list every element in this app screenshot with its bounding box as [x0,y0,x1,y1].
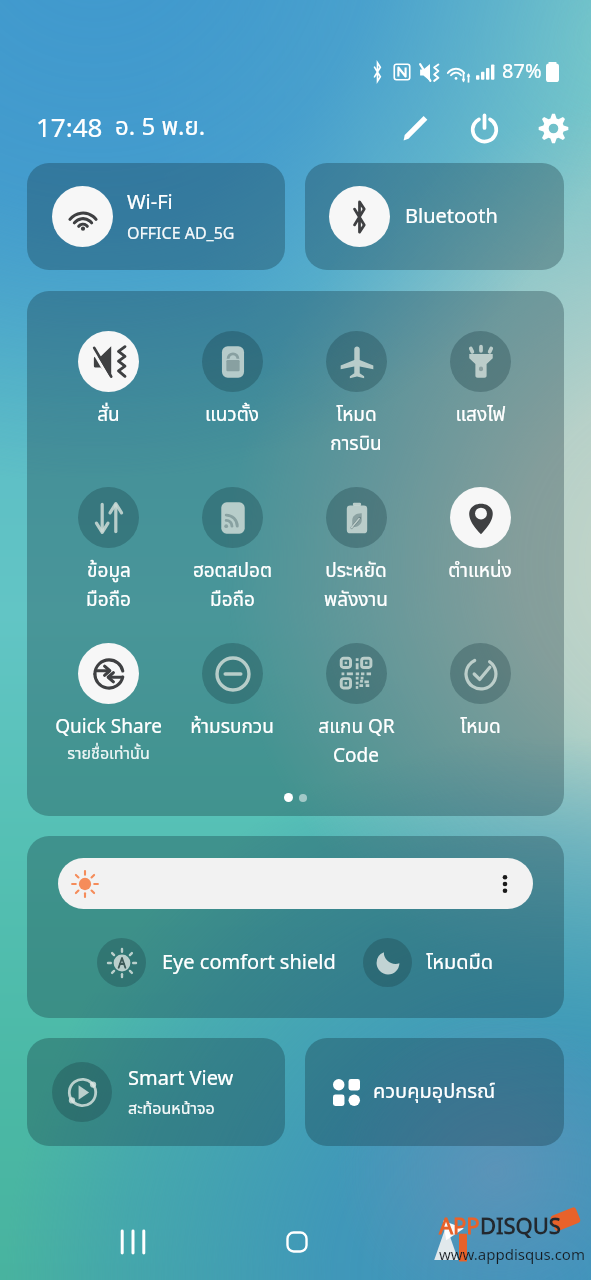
button[interactable]: Back [379,1211,543,1273]
button[interactable]: More options [58,858,533,909]
staticText: ประหยัด [325,557,387,586]
staticText: ตำแหน่ง [448,557,512,586]
button[interactable]: ห้ามรบกวน [170,643,294,799]
staticText: Eye comfort shield [162,948,336,978]
button[interactable]: Power [458,102,510,154]
staticText: การบิน [330,430,382,459]
staticText: ฮอตสปอต [193,557,272,586]
button[interactable]: Wi-Fi [27,163,285,270]
button[interactable]: โหมด [418,643,542,799]
staticText: สะท้อนหน้าจอ [128,1097,215,1121]
staticText: แสงไฟ [455,401,506,430]
staticText: 87% [502,57,542,87]
staticText: 17:48 [36,109,103,148]
button[interactable]: ตำแหน่ง [418,487,542,643]
staticText: ควบคุมอุปกรณ์ [373,1077,496,1107]
staticText: โหมด [460,713,501,742]
button[interactable]: Eye comfort shield [97,938,336,987]
button[interactable]: Settings [527,102,579,154]
staticText: ห้ามรบกวน [190,713,274,742]
staticText: ข้อมูล [87,557,131,586]
button[interactable]: แนวตั้ง [170,331,294,487]
button[interactable]: ข้อมูล [47,487,170,643]
staticText: OFFICE AD_5G [127,222,235,246]
button[interactable]: ควบคุมอุปกรณ์ [305,1038,564,1146]
button[interactable]: Quick Share [47,643,170,799]
staticText: สแกน QR [318,713,395,742]
staticText: www.appdisqus.com [439,1244,585,1267]
staticText: Quick Share [55,713,162,742]
button[interactable]: สั่น [47,331,170,487]
button[interactable]: Recents [51,1211,215,1273]
button[interactable]: Bluetooth [305,163,564,270]
button[interactable]: โหมด [294,331,418,487]
button[interactable]: แสงไฟ [418,331,542,487]
button[interactable]: Edit [389,102,441,154]
staticText: โหมด [336,401,377,430]
staticText: มือถือ [210,586,255,615]
staticText: อ. 5 พ.ย. [115,110,206,146]
staticText: โหมดมืด [426,948,494,978]
staticText: แนวตั้ง [205,401,259,430]
staticText: Smart View [128,1064,234,1094]
button[interactable]: สแกน QR [294,643,418,799]
button[interactable]: More options [493,872,517,896]
staticText: รายชื่อเท่านั้น [67,742,150,766]
staticText: Wi-Fi [127,188,173,218]
staticText: พลังงาน [324,586,388,615]
staticText: Code [333,742,379,771]
staticText: มือถือ [86,586,131,615]
staticText: APP [439,1211,480,1244]
staticText: สั่น [97,401,120,430]
button[interactable]: Smart View [27,1038,285,1146]
button[interactable]: Home [215,1211,379,1273]
button[interactable]: ประหยัด [294,487,418,643]
button[interactable]: โหมดมืด [363,938,494,987]
staticText: Bluetooth [405,202,498,232]
button[interactable]: ฮอตสปอต [170,487,294,643]
staticText: DISQUS [480,1211,561,1244]
